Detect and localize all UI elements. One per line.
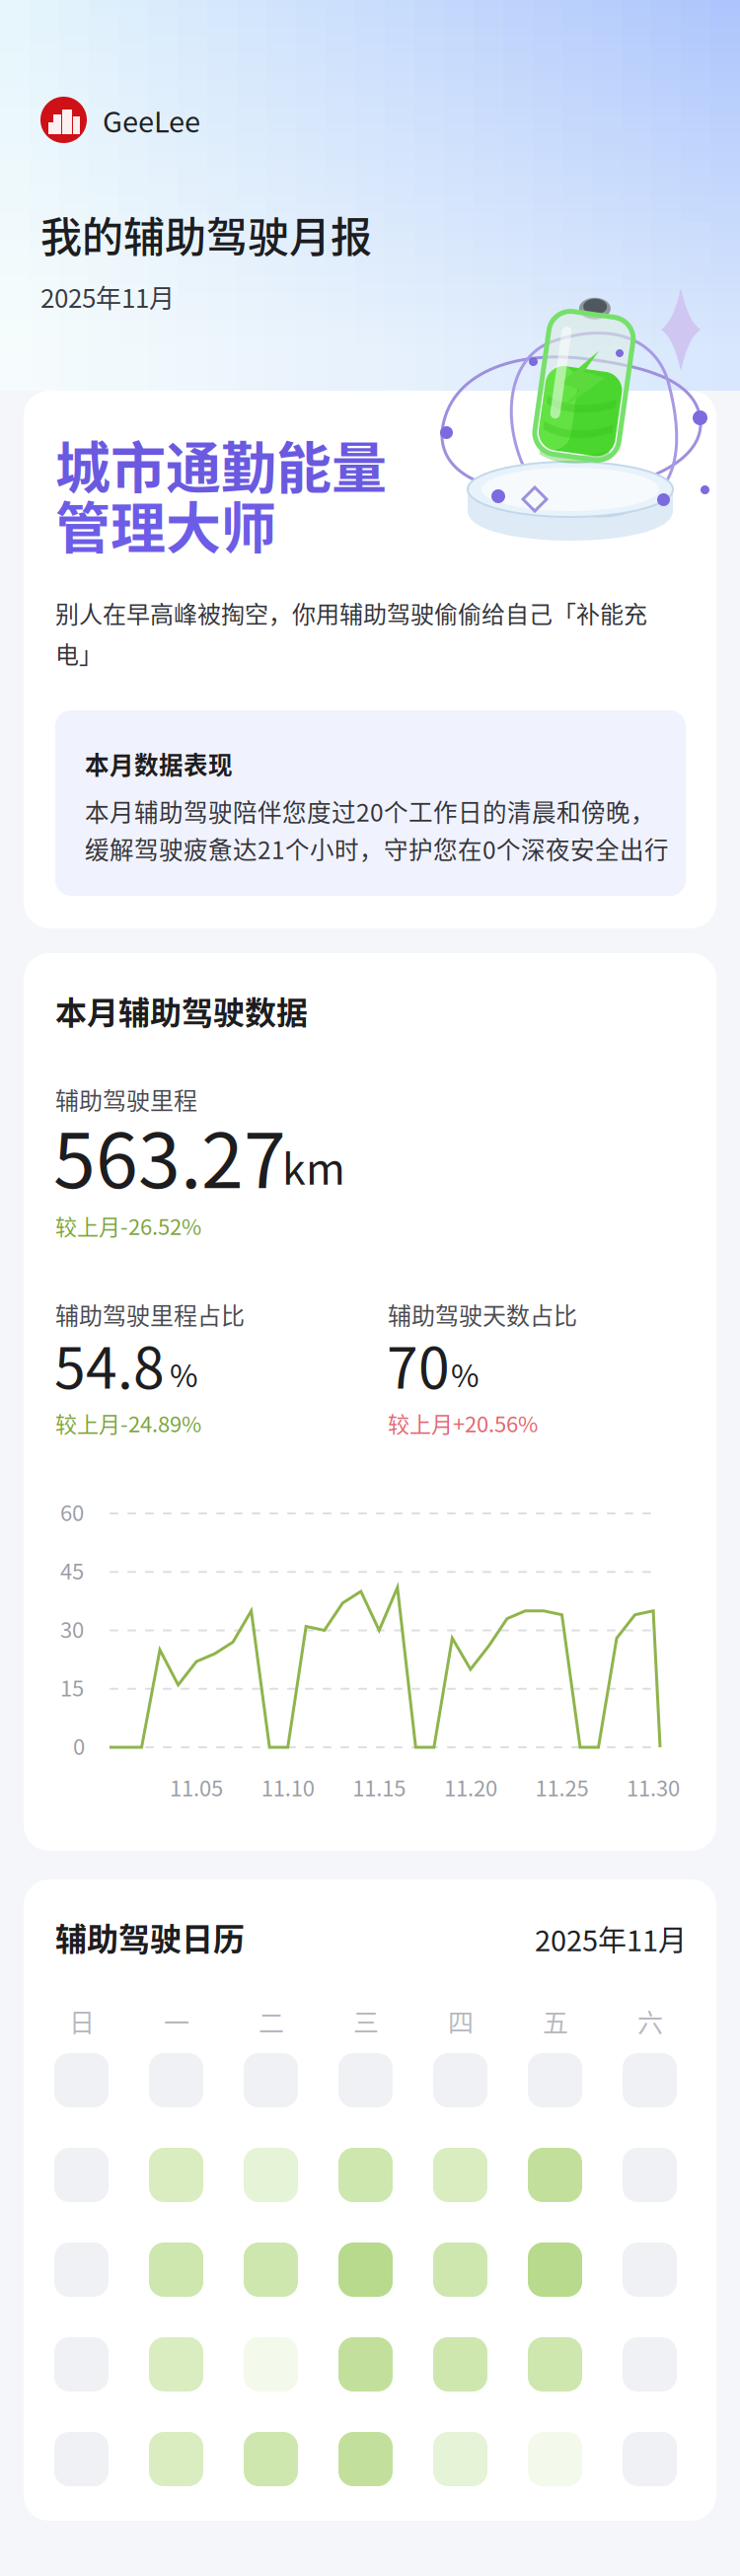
staticText: 缓解驾驶疲惫达21个小时，守护您在0个深夜安全出行 [85,831,669,866]
staticText: 0 [73,1730,85,1761]
staticText: 较上月-24.89% [55,1407,201,1439]
staticText: 563.27 [53,1100,286,1210]
staticText: 2025年11月 [40,278,175,315]
staticText: 别人在早高峰被掏空，你用辅助驾驶偷偷给自己「补能充 [55,596,647,630]
staticText: 本月数据表现 [85,746,233,781]
staticText: 辅助驾驶日历 [55,1914,245,1960]
staticText: 城市通勤能量 [55,424,387,504]
staticText: 54.8 [54,1323,165,1405]
staticText: 45 [60,1554,84,1586]
staticText: 30 [60,1613,84,1644]
staticText: 较上月+20.56% [388,1407,538,1439]
staticText: 70 [387,1323,450,1405]
staticText: 11.30 [627,1771,680,1803]
staticText: 辅助驾驶天数占比 [388,1297,577,1331]
staticText: 三 [353,2003,379,2040]
button[interactable]: GeeLee [40,97,200,143]
staticText: % [451,1352,480,1396]
staticText: 11.25 [535,1771,589,1803]
staticText: 较上月-26.52% [55,1210,201,1241]
staticText: 15 [60,1671,84,1703]
staticText: 2025年11月 [535,1918,687,1959]
staticText: 管理大师 [55,484,276,564]
staticText: 11.20 [444,1771,497,1803]
staticText: 辅助驾驶里程占比 [55,1297,245,1331]
staticText: 日 [69,2003,95,2040]
staticText: km [282,1135,345,1197]
staticText: 六 [637,2003,663,2040]
staticText: GeeLee [103,99,200,141]
staticText: % [170,1352,198,1396]
staticText: 电」 [55,636,103,670]
staticText: 辅助驾驶里程 [55,1082,197,1116]
staticText: 五 [543,2003,568,2040]
staticText: 本月辅助驾驶数据 [55,988,308,1033]
staticText: 11.15 [353,1771,406,1803]
staticText: 本月辅助驾驶陪伴您度过20个工作日的清晨和傍晚， [85,794,655,829]
staticText: 11.10 [261,1771,314,1803]
staticText: 一 [164,2003,189,2040]
staticText: 11.05 [170,1771,223,1803]
staticText: 60 [60,1496,84,1527]
staticText: 四 [448,2003,474,2040]
staticText: 二 [259,2003,284,2040]
staticText: 我的辅助驾驶月报 [40,204,372,264]
